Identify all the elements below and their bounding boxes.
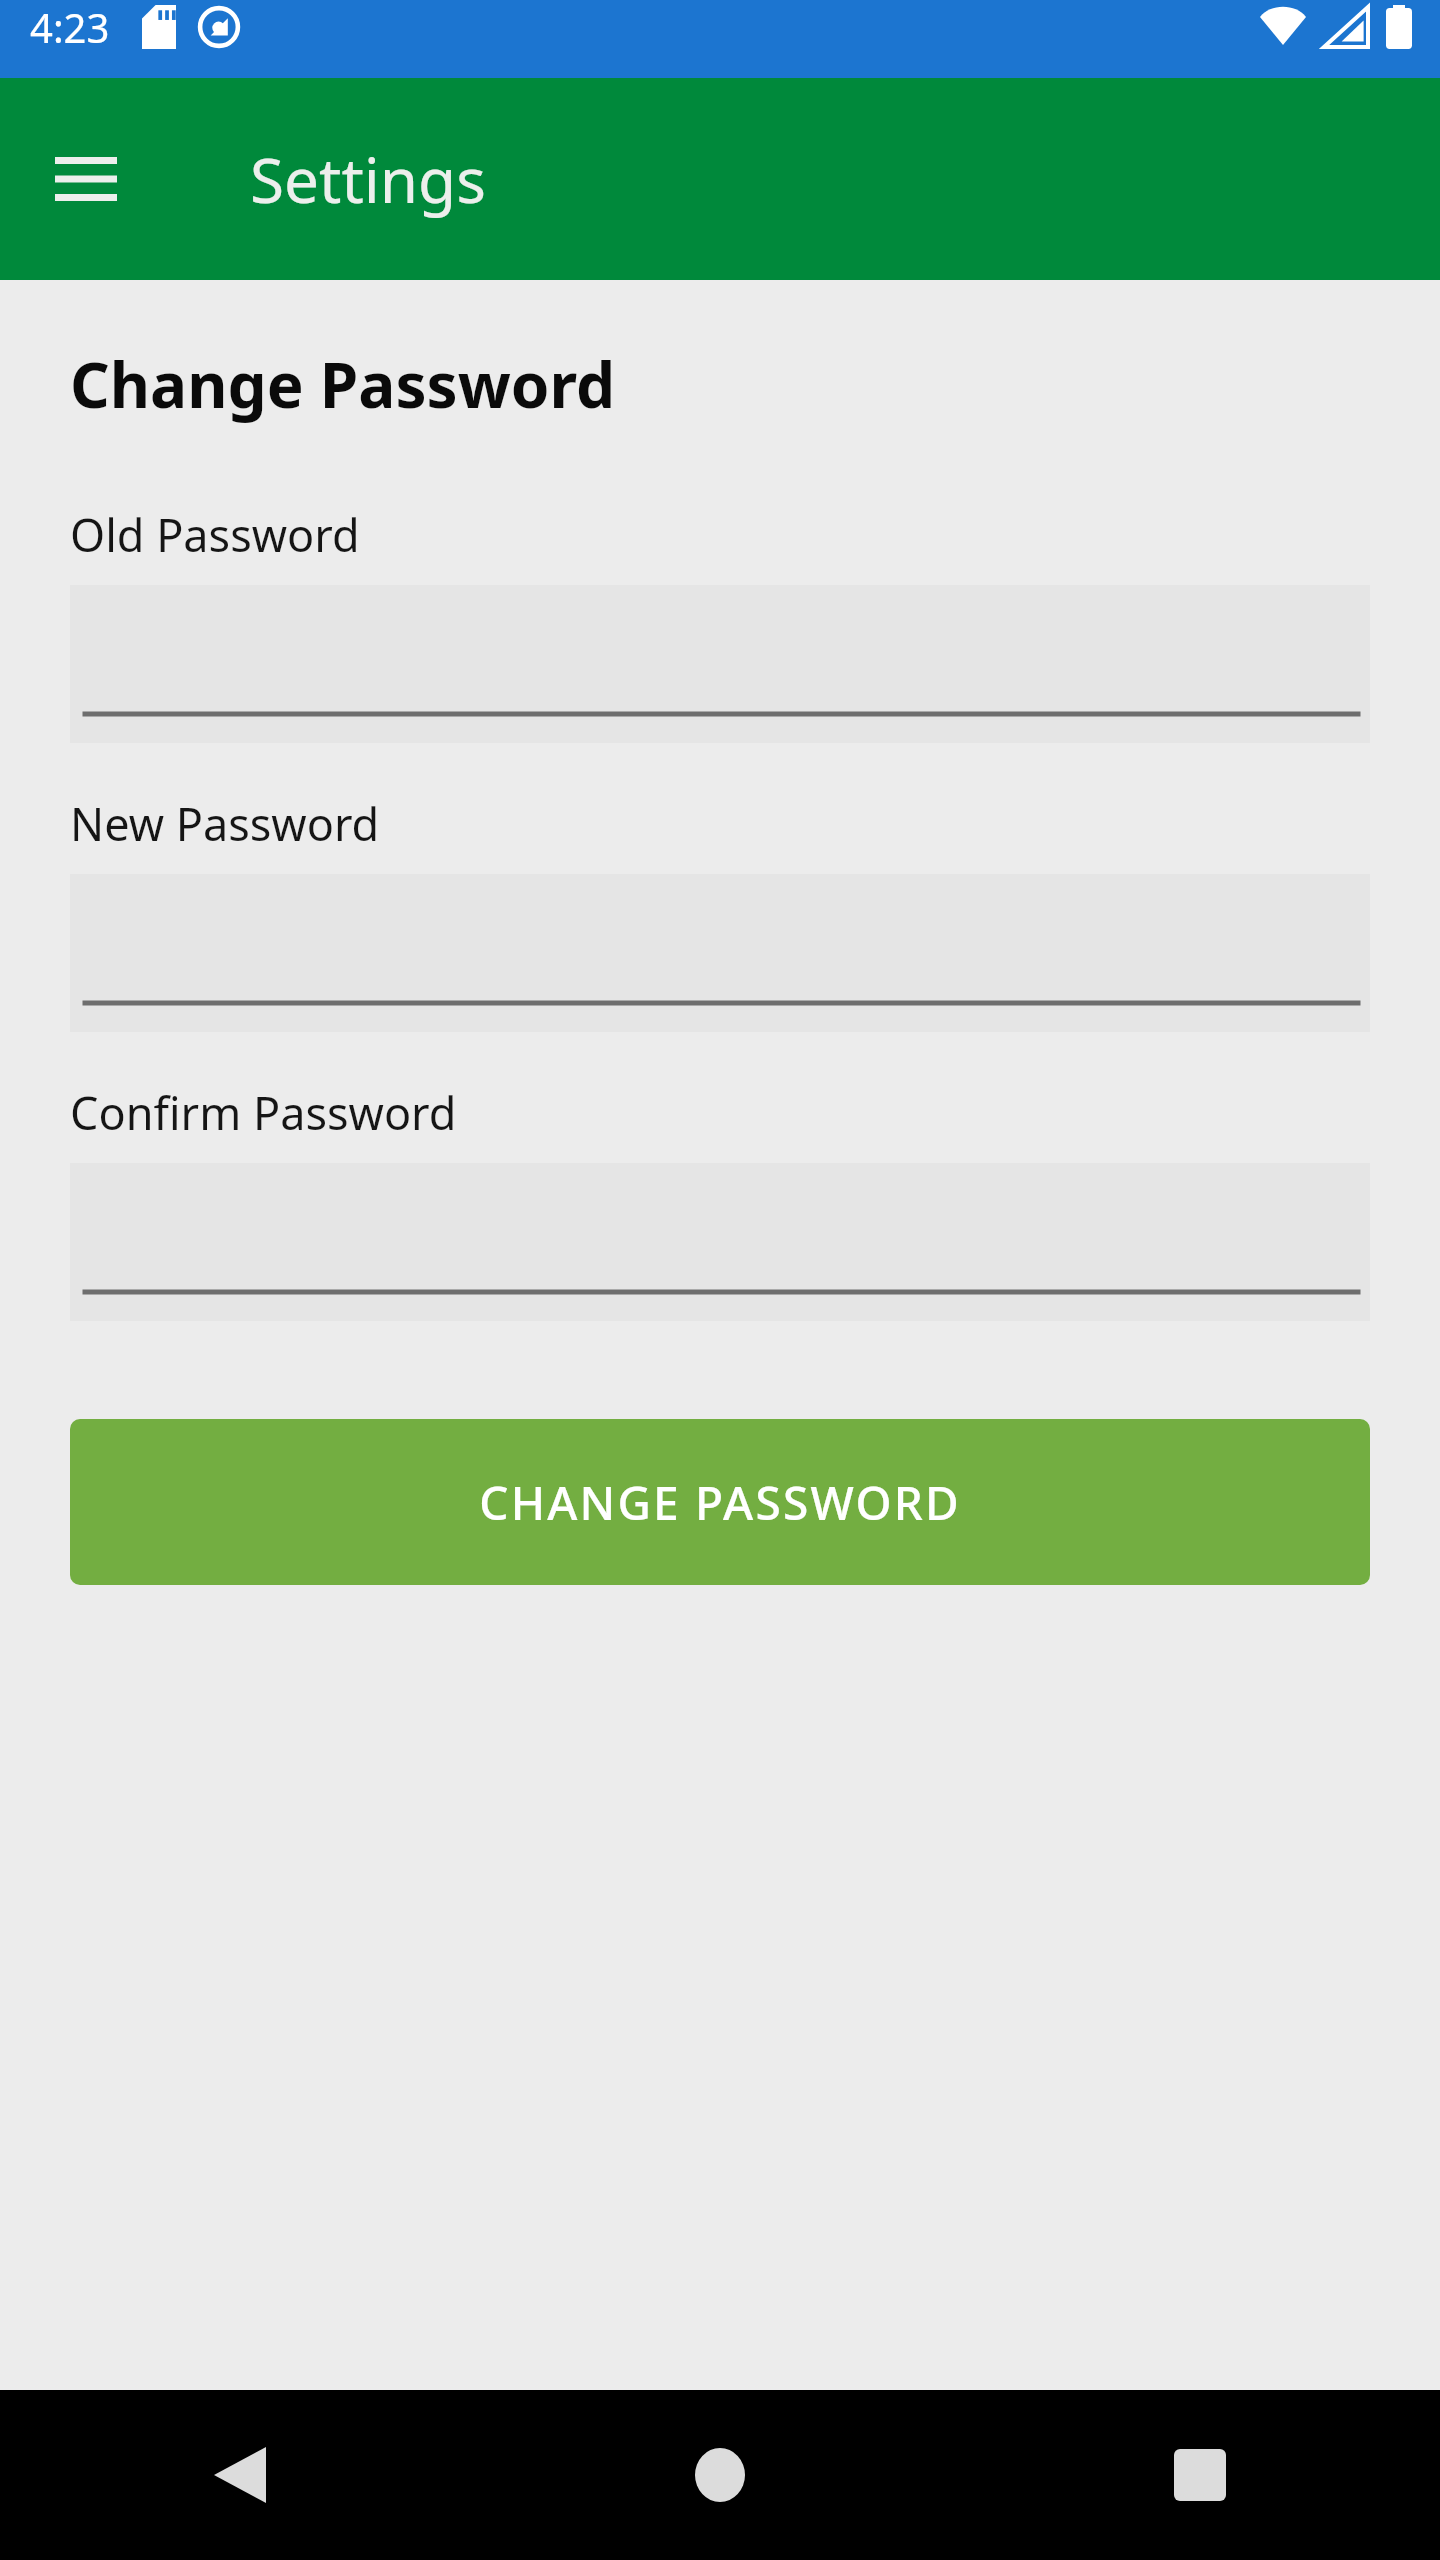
- staticText: Confirm Password: [70, 1082, 457, 1143]
- button[interactable]: Back: [0, 2390, 480, 2560]
- button[interactable]: Recent apps: [960, 2390, 1440, 2560]
- button[interactable]: [70, 874, 1370, 1032]
- button[interactable]: [70, 1163, 1370, 1321]
- staticText: CHANGE PASSWORD: [479, 1471, 961, 1534]
- button[interactable]: CHANGE PASSWORD: [70, 1419, 1370, 1585]
- staticText: Settings: [250, 137, 486, 221]
- staticText: 4:23: [30, 0, 110, 54]
- staticText: Old Password: [70, 504, 360, 565]
- button[interactable]: Home: [480, 2390, 960, 2560]
- staticText: New Password: [70, 793, 380, 854]
- button[interactable]: [70, 585, 1370, 743]
- button[interactable]: Open navigation menu: [34, 127, 138, 231]
- staticText: Change Password: [70, 342, 616, 426]
